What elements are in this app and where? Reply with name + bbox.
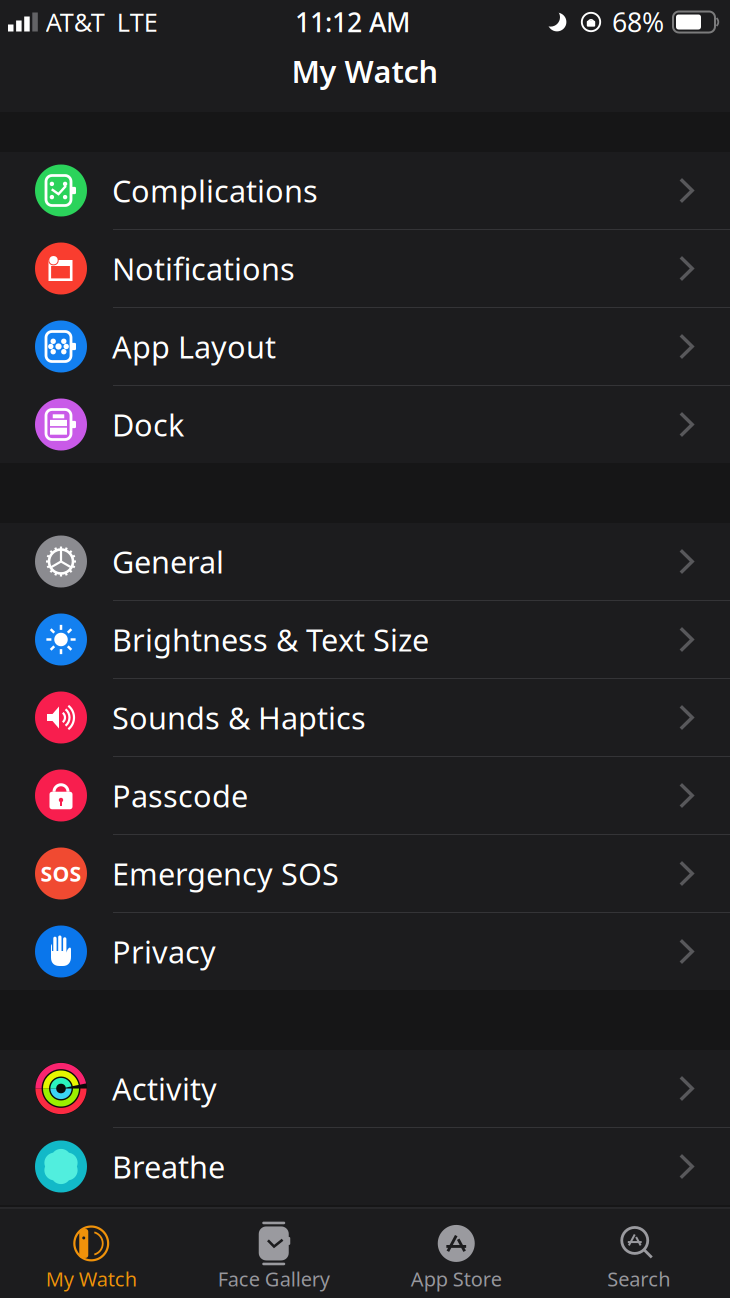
button[interactable]: Brightness & Text Size: [0, 601, 730, 679]
staticText: App Layout: [112, 326, 276, 367]
staticText: Activity: [112, 1068, 217, 1109]
staticText: Complications: [112, 170, 318, 211]
button[interactable]: Passcode: [0, 757, 730, 835]
button[interactable]: Activity: [0, 1050, 730, 1128]
staticText: Emergency SOS: [112, 853, 339, 894]
button[interactable]: Sounds & Haptics: [0, 679, 730, 757]
staticText: SOS: [40, 859, 81, 888]
button[interactable]: App Layout: [0, 308, 730, 386]
button[interactable]: SOS: [0, 835, 730, 913]
staticText: Search: [607, 1265, 670, 1292]
button[interactable]: Privacy: [0, 913, 730, 990]
button[interactable]: Face Gallery: [182, 1208, 365, 1298]
staticText: Dock: [112, 404, 184, 445]
staticText: My Watch: [46, 1265, 137, 1292]
staticText: My Watch: [291, 51, 438, 91]
button[interactable]: Complications: [0, 152, 730, 230]
button[interactable]: App Store: [365, 1208, 547, 1298]
staticText: 11:12 AM: [295, 4, 410, 40]
staticText: App Store: [411, 1265, 502, 1292]
staticText: Notifications: [112, 248, 295, 289]
staticText: Breathe: [112, 1146, 225, 1187]
staticText: Sounds & Haptics: [112, 697, 366, 738]
staticText: AT&T: [46, 5, 105, 39]
staticText: 68%: [612, 4, 664, 40]
button[interactable]: Dock: [0, 386, 730, 463]
staticText: General: [112, 541, 224, 582]
staticText: Passcode: [112, 775, 248, 816]
button[interactable]: Notifications: [0, 230, 730, 308]
button[interactable]: Search: [547, 1208, 730, 1298]
staticText: Brightness & Text Size: [112, 619, 429, 660]
staticText: Face Gallery: [218, 1265, 330, 1292]
staticText: Privacy: [112, 931, 216, 972]
button[interactable]: General: [0, 523, 730, 601]
button[interactable]: Breathe: [0, 1128, 730, 1205]
staticText: LTE: [117, 5, 158, 39]
button[interactable]: My Watch: [0, 1208, 182, 1298]
